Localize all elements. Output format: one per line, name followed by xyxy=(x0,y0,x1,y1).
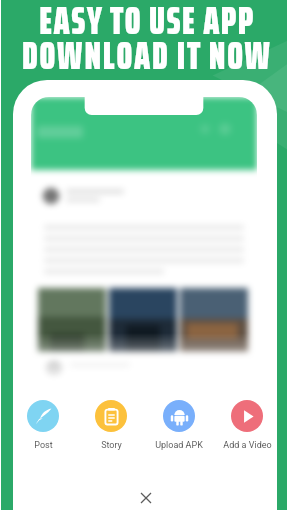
staticText: EASY TO USE APP xyxy=(3,0,288,51)
staticText: Add a Video xyxy=(223,440,272,451)
staticText: Story xyxy=(101,440,122,451)
staticText: Upload APK xyxy=(155,440,203,451)
button[interactable]: Close xyxy=(134,486,157,509)
button[interactable]: Add a Video xyxy=(222,400,272,451)
button[interactable]: Story xyxy=(86,400,136,451)
staticText: Post xyxy=(34,440,53,451)
staticText: DOWNLOAD IT NOW xyxy=(3,26,288,86)
button[interactable]: Upload APK xyxy=(154,400,204,451)
button[interactable]: Post xyxy=(18,400,68,451)
